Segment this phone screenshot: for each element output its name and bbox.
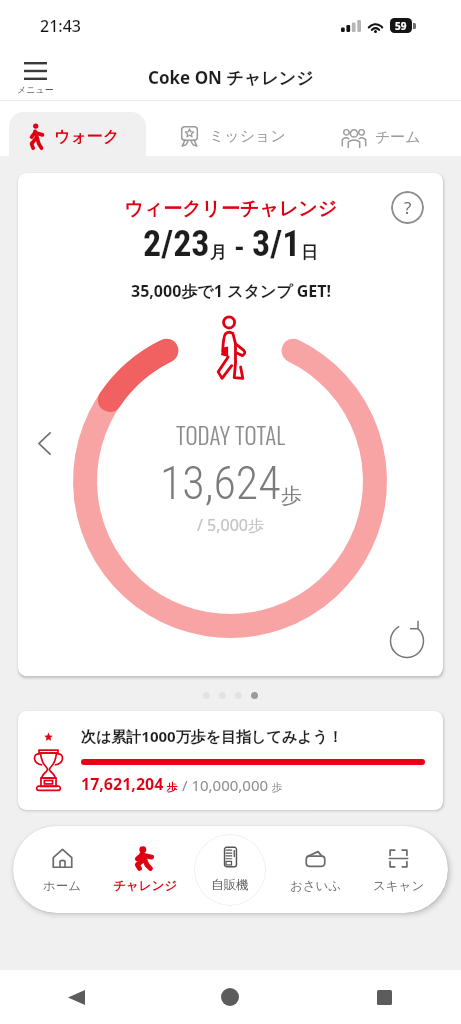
button[interactable]: Menu (15, 62, 56, 95)
staticText: / 10,000,000 (178, 775, 269, 795)
staticText: おさいふ (290, 878, 342, 894)
button[interactable]: ウォーク (9, 112, 146, 157)
button[interactable]: ホーム (21, 826, 103, 913)
button[interactable]: ミッション (152, 112, 312, 157)
staticText: TODAY TOTAL (176, 418, 285, 452)
staticText: - (227, 229, 252, 264)
staticText: ミッション (209, 127, 286, 146)
staticText: 歩 (281, 483, 302, 509)
staticText: 17,621,204 (81, 773, 164, 795)
staticText: 59 (395, 19, 407, 33)
staticText: 月 (210, 242, 227, 263)
staticText: Coke ON チャレンジ (148, 66, 314, 89)
button[interactable]: チャレンジ (103, 826, 186, 913)
button[interactable]: 自販機 (186, 826, 274, 913)
other: Back (68, 989, 85, 1006)
other: Recents (377, 990, 392, 1005)
button[interactable]: 次は累計1000万歩を目指してみよう！ (18, 711, 443, 810)
staticText: 2/23 (143, 223, 210, 265)
staticText: ? (404, 196, 412, 219)
staticText: 21:43 (40, 15, 81, 37)
staticText: / 5,000歩 (197, 514, 265, 536)
button[interactable]: Previous (26, 425, 62, 461)
other: Home (221, 988, 239, 1006)
button[interactable]: Refresh (386, 620, 428, 662)
staticText: ウィークリーチャレンジ (124, 197, 338, 221)
staticText: 次は累計1000万歩を目指してみよう！ (81, 726, 343, 746)
button[interactable]: スキャン (357, 826, 440, 913)
staticText: チーム (375, 128, 421, 147)
staticText: メニュー (17, 84, 54, 95)
staticText: 3/1 (252, 223, 301, 265)
staticText: 歩 (164, 779, 178, 794)
staticText: ウォーク (54, 127, 120, 147)
staticText: 13,624 (160, 456, 281, 510)
staticText: 歩 (269, 779, 283, 794)
staticText: 自販機 (211, 877, 249, 893)
button[interactable]: チーム (311, 112, 451, 157)
staticText: ホーム (43, 878, 82, 894)
staticText: チャレンジ (113, 878, 177, 894)
staticText: 日 (301, 242, 318, 263)
staticText: スキャン (373, 878, 425, 894)
button[interactable]: おさいふ (274, 826, 357, 913)
staticText: 35,000歩で1 スタンプ GET! (131, 280, 331, 302)
button[interactable]: Help (391, 191, 424, 224)
